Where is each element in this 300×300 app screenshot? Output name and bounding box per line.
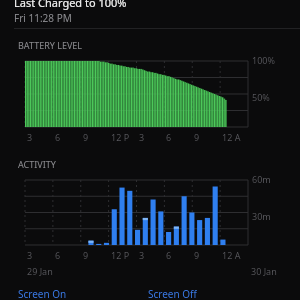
- staticText: 60m: [252, 173, 271, 185]
- button[interactable]: Screen On: [18, 287, 148, 300]
- staticText: Screen Off: [148, 287, 197, 300]
- staticText: 30 Jan: [251, 265, 277, 277]
- staticText: 29 Jan: [27, 265, 53, 277]
- staticText: Last Charged to 100%: [14, 0, 127, 10]
- staticText: 6: [55, 131, 61, 143]
- staticText: 100%: [252, 54, 275, 66]
- staticText: 6: [166, 131, 172, 143]
- staticText: 9: [83, 249, 89, 261]
- staticText: 12 A: [222, 131, 241, 143]
- staticText: 12 A: [222, 249, 241, 261]
- staticText: 6: [55, 249, 61, 261]
- staticText: 3: [27, 249, 33, 261]
- staticText: 12 P: [111, 131, 130, 143]
- staticText: 3: [139, 249, 145, 261]
- staticText: 9: [194, 249, 200, 261]
- button[interactable]: Screen Off: [148, 287, 197, 300]
- staticText: BATTERY LEVEL: [18, 39, 83, 51]
- staticText: Fri 11:28 PM: [14, 11, 72, 25]
- staticText: 12 P: [111, 249, 130, 261]
- staticText: Screen On: [18, 287, 67, 300]
- staticText: 9: [194, 131, 200, 143]
- staticText: 50%: [252, 91, 270, 103]
- staticText: 9: [83, 131, 89, 143]
- staticText: 3: [27, 131, 33, 143]
- staticText: 6: [166, 249, 172, 261]
- staticText: 30m: [252, 210, 271, 222]
- staticText: 3: [139, 131, 145, 143]
- staticText: ACTIVITY: [18, 158, 56, 170]
